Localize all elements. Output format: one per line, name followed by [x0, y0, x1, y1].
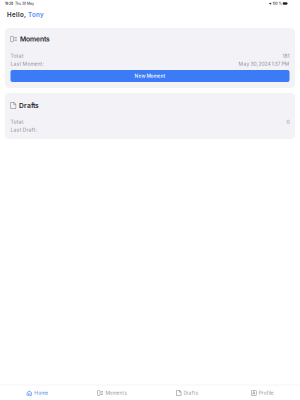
button[interactable]: Moments [75, 389, 150, 397]
staticText: Thu 30 May [13, 1, 34, 6]
staticText: Hello, [7, 11, 28, 18]
staticText: Drafts [183, 390, 198, 396]
staticText: Moments [20, 35, 50, 43]
staticText: 0 [286, 119, 289, 125]
staticText: Drafts [19, 101, 39, 110]
button[interactable]: Home [0, 389, 75, 397]
staticText: Last Moment: [10, 61, 43, 67]
staticText: Last Draft: [10, 127, 36, 133]
staticText: 181 [282, 53, 289, 59]
staticText: 19:28 [5, 1, 13, 6]
staticText: Moments [105, 390, 127, 396]
staticText: Total: [10, 53, 23, 59]
staticText: 100 % [272, 1, 282, 6]
button[interactable]: Profile [225, 389, 300, 397]
staticText: Home [34, 390, 48, 396]
staticText: May 30, 2024 1:37 PM [238, 61, 289, 67]
button[interactable]: New Moment [10, 70, 289, 82]
staticText: Tony [28, 11, 44, 18]
staticText: New Moment [134, 73, 165, 79]
button[interactable]: Drafts [150, 389, 225, 397]
staticText: Total: [10, 119, 23, 125]
staticText: Profile [259, 390, 274, 396]
